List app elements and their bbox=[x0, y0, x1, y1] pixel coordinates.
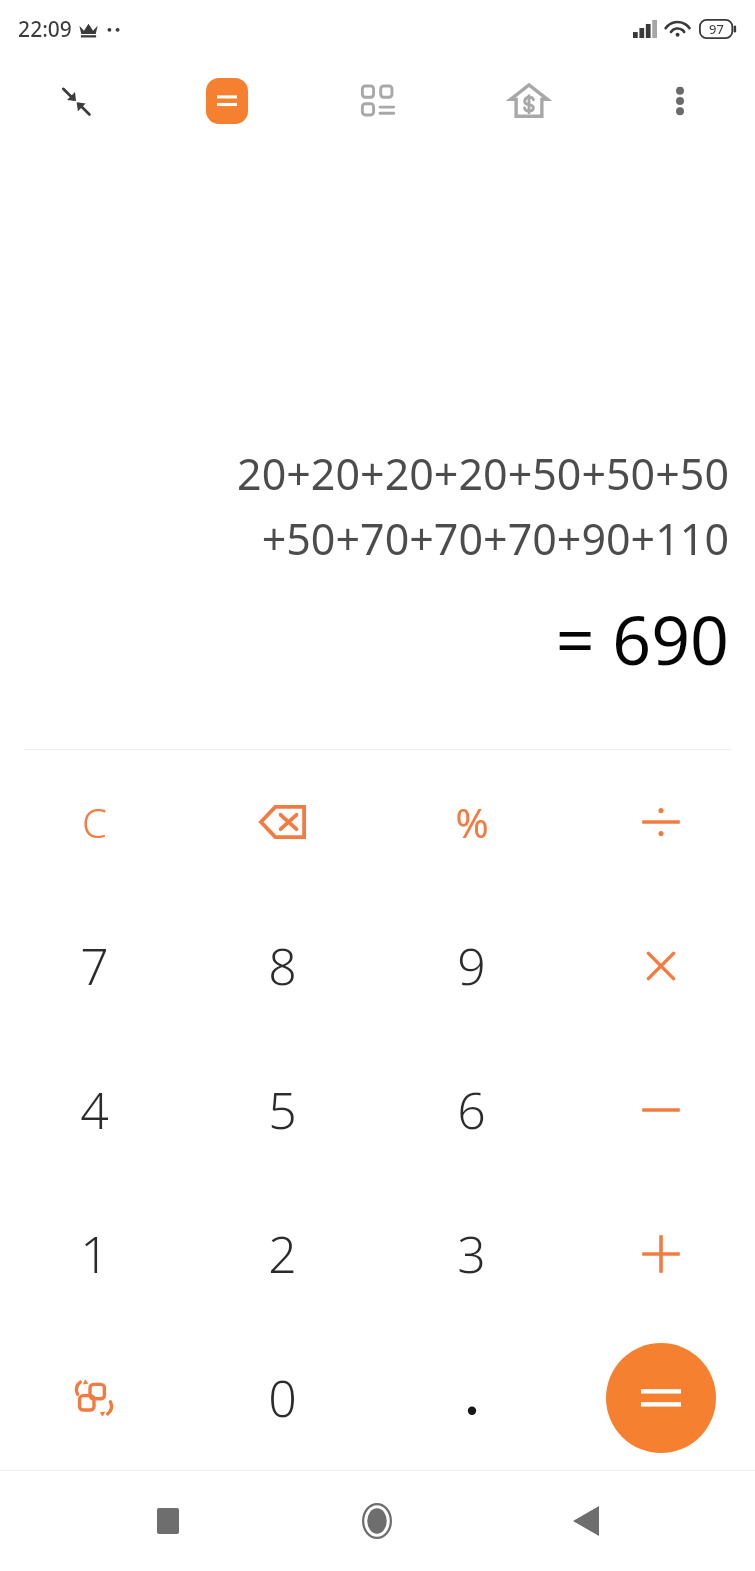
button[interactable]: More options bbox=[604, 58, 755, 144]
button[interactable]: 7 bbox=[0, 894, 188, 1038]
staticText: 3 bbox=[457, 1220, 486, 1288]
staticText: 4 bbox=[80, 1076, 109, 1144]
button[interactable]: Back bbox=[546, 1481, 626, 1561]
button[interactable]: 1 bbox=[0, 1182, 188, 1326]
button[interactable]: Mortgage bbox=[453, 58, 604, 144]
button[interactable]: Equals bbox=[606, 1343, 716, 1453]
staticText: 22:09 bbox=[18, 15, 72, 44]
staticText: 20+20+20+20+50+50+50 bbox=[26, 444, 729, 503]
staticText: 0 bbox=[268, 1364, 297, 1432]
staticText: % bbox=[455, 795, 489, 849]
button[interactable]: 4 bbox=[0, 1038, 188, 1182]
button[interactable]: Minus bbox=[566, 1038, 755, 1182]
button[interactable]: Layouts bbox=[302, 58, 453, 144]
button[interactable]: Decimal point bbox=[377, 1326, 566, 1470]
staticText: 8 bbox=[268, 932, 297, 1000]
staticText: C bbox=[82, 795, 107, 849]
button[interactable]: Clear bbox=[0, 750, 188, 894]
staticText: 2 bbox=[268, 1220, 297, 1288]
button[interactable]: 6 bbox=[377, 1038, 566, 1182]
button[interactable]: 8 bbox=[188, 894, 377, 1038]
button[interactable]: Calculator mode bbox=[151, 58, 302, 144]
staticText: 97 bbox=[709, 20, 724, 38]
button[interactable]: 3 bbox=[377, 1182, 566, 1326]
button[interactable]: 0 bbox=[188, 1326, 377, 1470]
button[interactable]: 9 bbox=[377, 894, 566, 1038]
button[interactable]: Backspace bbox=[188, 750, 377, 894]
staticText: 7 bbox=[80, 932, 109, 1000]
staticText: 9 bbox=[457, 932, 486, 1000]
button[interactable]: Percent bbox=[377, 750, 566, 894]
button[interactable]: Recents bbox=[128, 1481, 208, 1561]
button[interactable]: 5 bbox=[188, 1038, 377, 1182]
staticText: 1 bbox=[80, 1220, 109, 1288]
staticText: +50+70+70+70+90+110 bbox=[26, 509, 729, 568]
button[interactable]: Plus bbox=[566, 1182, 755, 1326]
staticText: 6 bbox=[457, 1076, 486, 1144]
staticText: = 690 bbox=[26, 592, 729, 685]
button[interactable]: Home bbox=[337, 1481, 417, 1561]
button[interactable]: Multiply bbox=[566, 894, 755, 1038]
staticText: 5 bbox=[268, 1076, 297, 1144]
button[interactable]: Convert bbox=[0, 1326, 188, 1470]
button[interactable]: 2 bbox=[188, 1182, 377, 1326]
button[interactable]: Divide bbox=[566, 750, 755, 894]
button[interactable]: Collapse bbox=[0, 58, 151, 144]
